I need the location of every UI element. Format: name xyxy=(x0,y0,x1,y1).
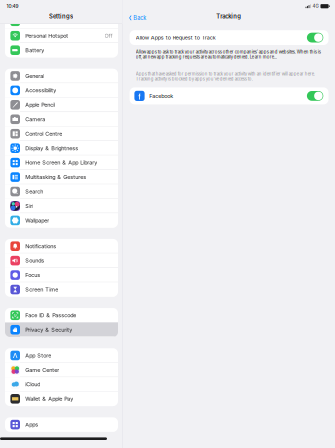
button[interactable]: Notifications xyxy=(5,239,118,253)
button[interactable]: Face ID & Passcode xyxy=(5,308,118,322)
staticText: App Store xyxy=(25,352,51,359)
staticText: Wallet & Apple Pay xyxy=(25,395,73,402)
staticText: Game Center xyxy=(25,367,59,373)
staticText: Back xyxy=(133,14,146,21)
staticText: 10:49 xyxy=(7,3,19,9)
button[interactable]: Toggle on xyxy=(307,33,323,42)
button[interactable]: Camera xyxy=(5,112,118,126)
button[interactable]: Control Centre xyxy=(5,126,118,141)
button[interactable]: Home Screen & App Library xyxy=(5,155,118,170)
staticText: Allow apps to ask to track your activity… xyxy=(136,49,321,59)
button[interactable]: Game Center xyxy=(5,363,118,377)
button[interactable]: Apple Pencil xyxy=(5,98,118,112)
button[interactable]: Wallpaper xyxy=(5,213,118,228)
button[interactable]: Toggle on xyxy=(307,91,323,101)
staticText: Display & Brightness xyxy=(25,145,78,151)
staticText: Focus xyxy=(25,272,40,278)
staticText: Settings xyxy=(49,13,73,20)
button[interactable]: Battery xyxy=(5,43,118,57)
staticText: Control Centre xyxy=(25,130,62,137)
staticText: Apple Pencil xyxy=(25,101,55,108)
button[interactable]: App Store xyxy=(5,348,118,363)
button[interactable]: Multitasking & Gestures xyxy=(5,170,118,184)
button[interactable]: Apps xyxy=(5,417,118,432)
staticText: Camera xyxy=(25,116,45,123)
staticText: Facebook xyxy=(149,93,173,99)
staticText: Search xyxy=(25,188,43,195)
staticText: 4G xyxy=(312,3,318,9)
staticText: Screen Time xyxy=(25,286,58,293)
staticText: Mobile Data xyxy=(25,18,55,25)
staticText: Home Screen & App Library xyxy=(25,159,97,166)
staticText: Notifications xyxy=(25,243,56,249)
button[interactable]: Siri xyxy=(5,199,118,213)
button[interactable]: iCloud xyxy=(5,377,118,391)
staticText: Privacy & Security xyxy=(25,326,72,333)
staticText: Sounds xyxy=(25,257,44,264)
staticText: iCloud xyxy=(25,381,40,388)
button[interactable]: Sounds xyxy=(5,253,118,268)
button[interactable]: Allow Apps to Request to Track xyxy=(130,30,328,45)
button[interactable]: Wallet & Apple Pay xyxy=(5,392,118,406)
button[interactable]: Mobile Data xyxy=(5,14,118,28)
button[interactable]: Privacy & Security xyxy=(5,322,118,337)
button[interactable]: Display & Brightness xyxy=(5,141,118,155)
staticText: Apps that have asked for permission to t… xyxy=(136,71,315,82)
button[interactable]: Facebook xyxy=(130,87,328,104)
button[interactable]: Personal Hotspot xyxy=(5,28,118,43)
staticText: Accessibility xyxy=(25,87,56,94)
staticText: Siri xyxy=(25,203,33,209)
button[interactable]: Back xyxy=(123,12,146,24)
staticText: Multitasking & Gestures xyxy=(25,174,86,180)
staticText: Apps xyxy=(25,421,38,428)
button[interactable]: Accessibility xyxy=(5,83,118,97)
button[interactable]: Focus xyxy=(5,268,118,282)
staticText: General xyxy=(25,73,44,79)
staticText: Face ID & Passcode xyxy=(25,312,76,319)
staticText: Wallpaper xyxy=(25,217,49,224)
staticText: Off xyxy=(104,32,112,39)
button[interactable]: General xyxy=(5,69,118,83)
button[interactable]: Screen Time xyxy=(5,282,118,297)
button[interactable]: Search xyxy=(5,184,118,199)
staticText: Battery xyxy=(25,47,44,53)
staticText: Personal Hotspot xyxy=(25,32,68,39)
staticText: Allow Apps to Request to Track xyxy=(136,34,216,41)
staticText: Tracking xyxy=(216,13,241,20)
